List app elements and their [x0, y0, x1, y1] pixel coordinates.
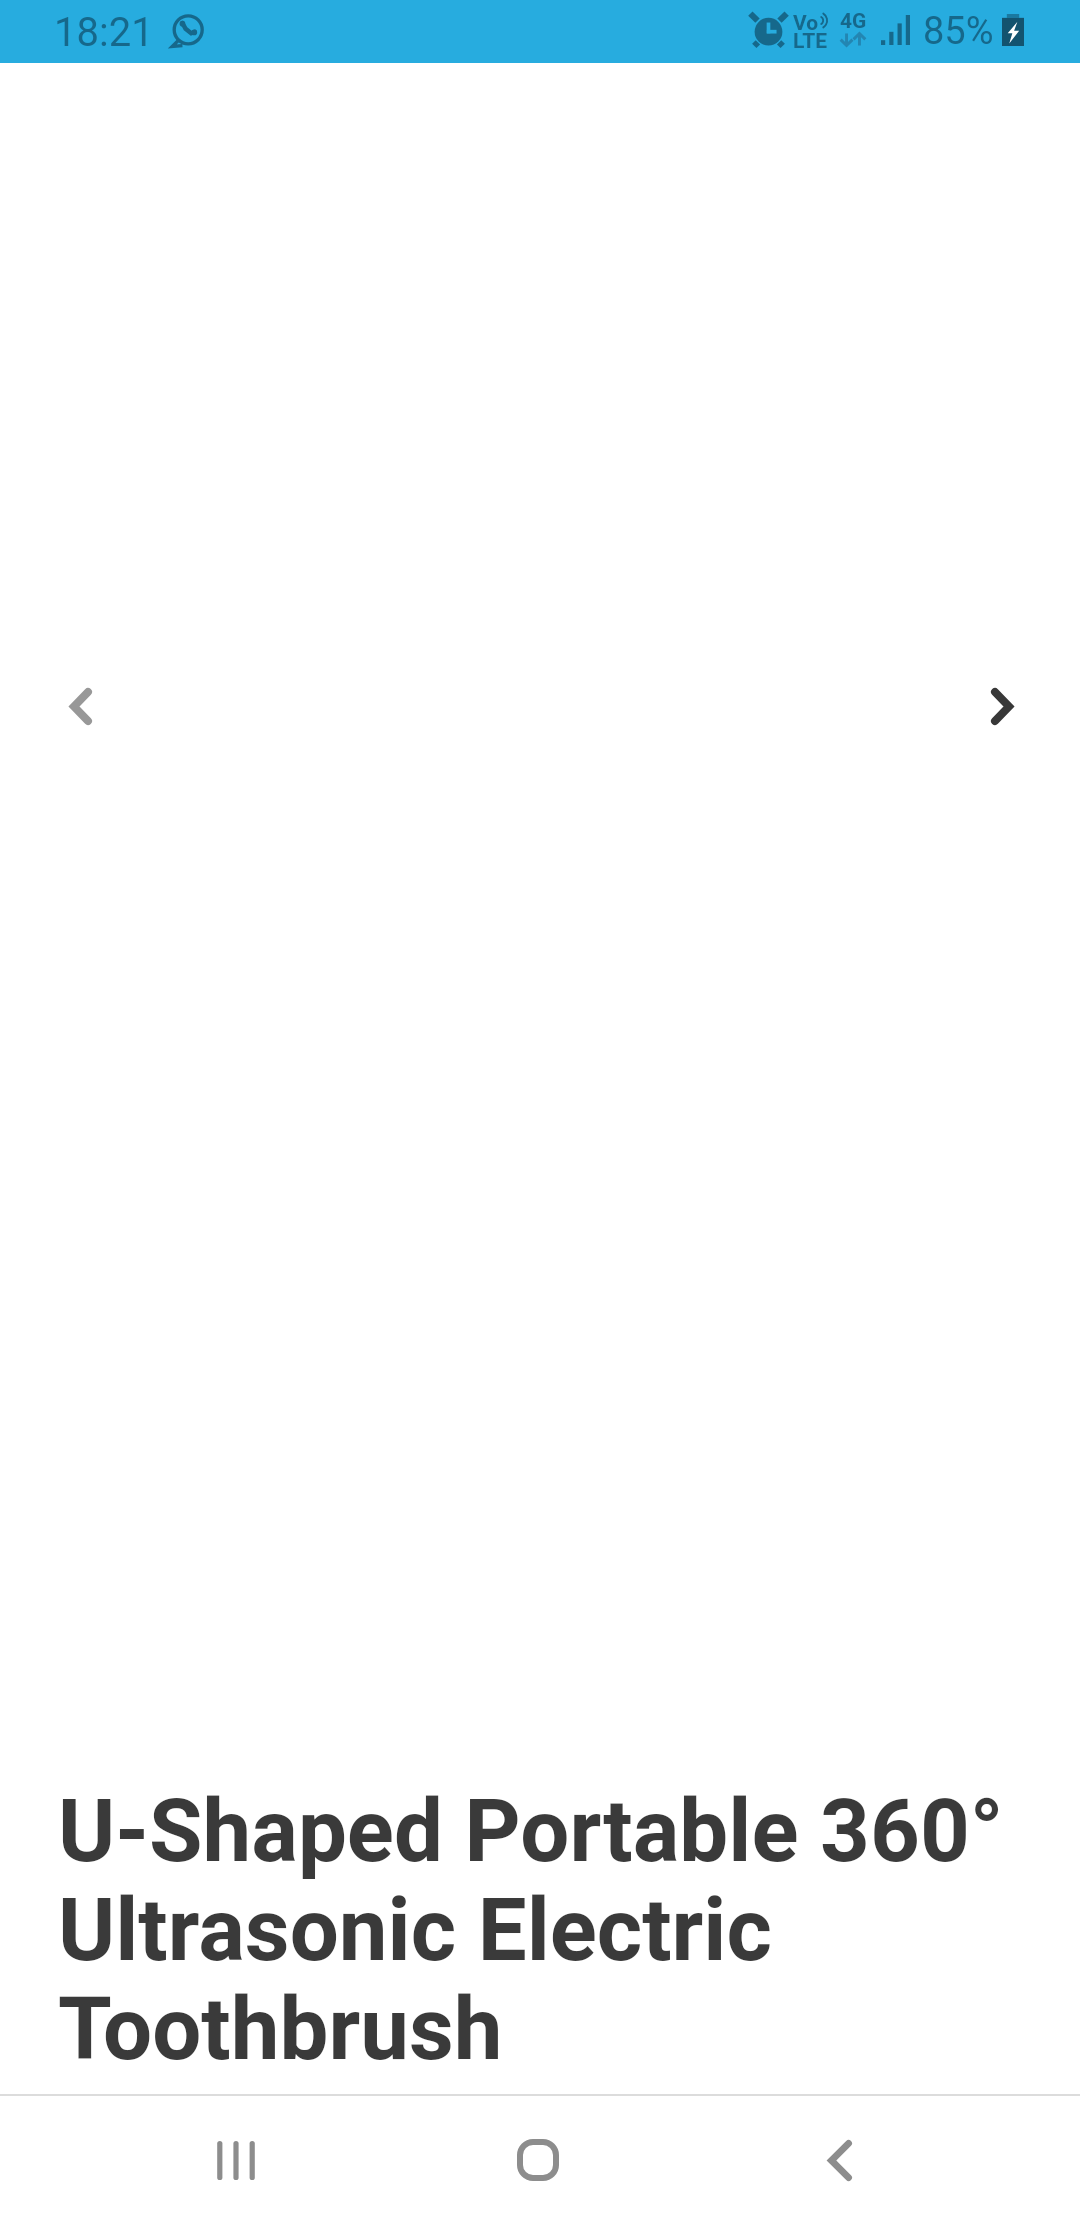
button[interactable]: Back — [760, 2101, 920, 2219]
button[interactable]: Recent apps — [156, 2101, 316, 2219]
staticText: 4G — [840, 9, 867, 34]
button[interactable]: Previous image — [21, 646, 141, 766]
button[interactable]: Home — [458, 2101, 618, 2219]
button[interactable]: Next image — [942, 646, 1062, 766]
staticText: LTE — [793, 29, 828, 54]
staticText: 18:21 — [54, 9, 154, 56]
staticText: Vo — [793, 11, 819, 36]
button[interactable]: U-Shaped Portable 360° Ultrasonic Electr… — [58, 1780, 1018, 2080]
staticText: 85% — [923, 9, 994, 54]
